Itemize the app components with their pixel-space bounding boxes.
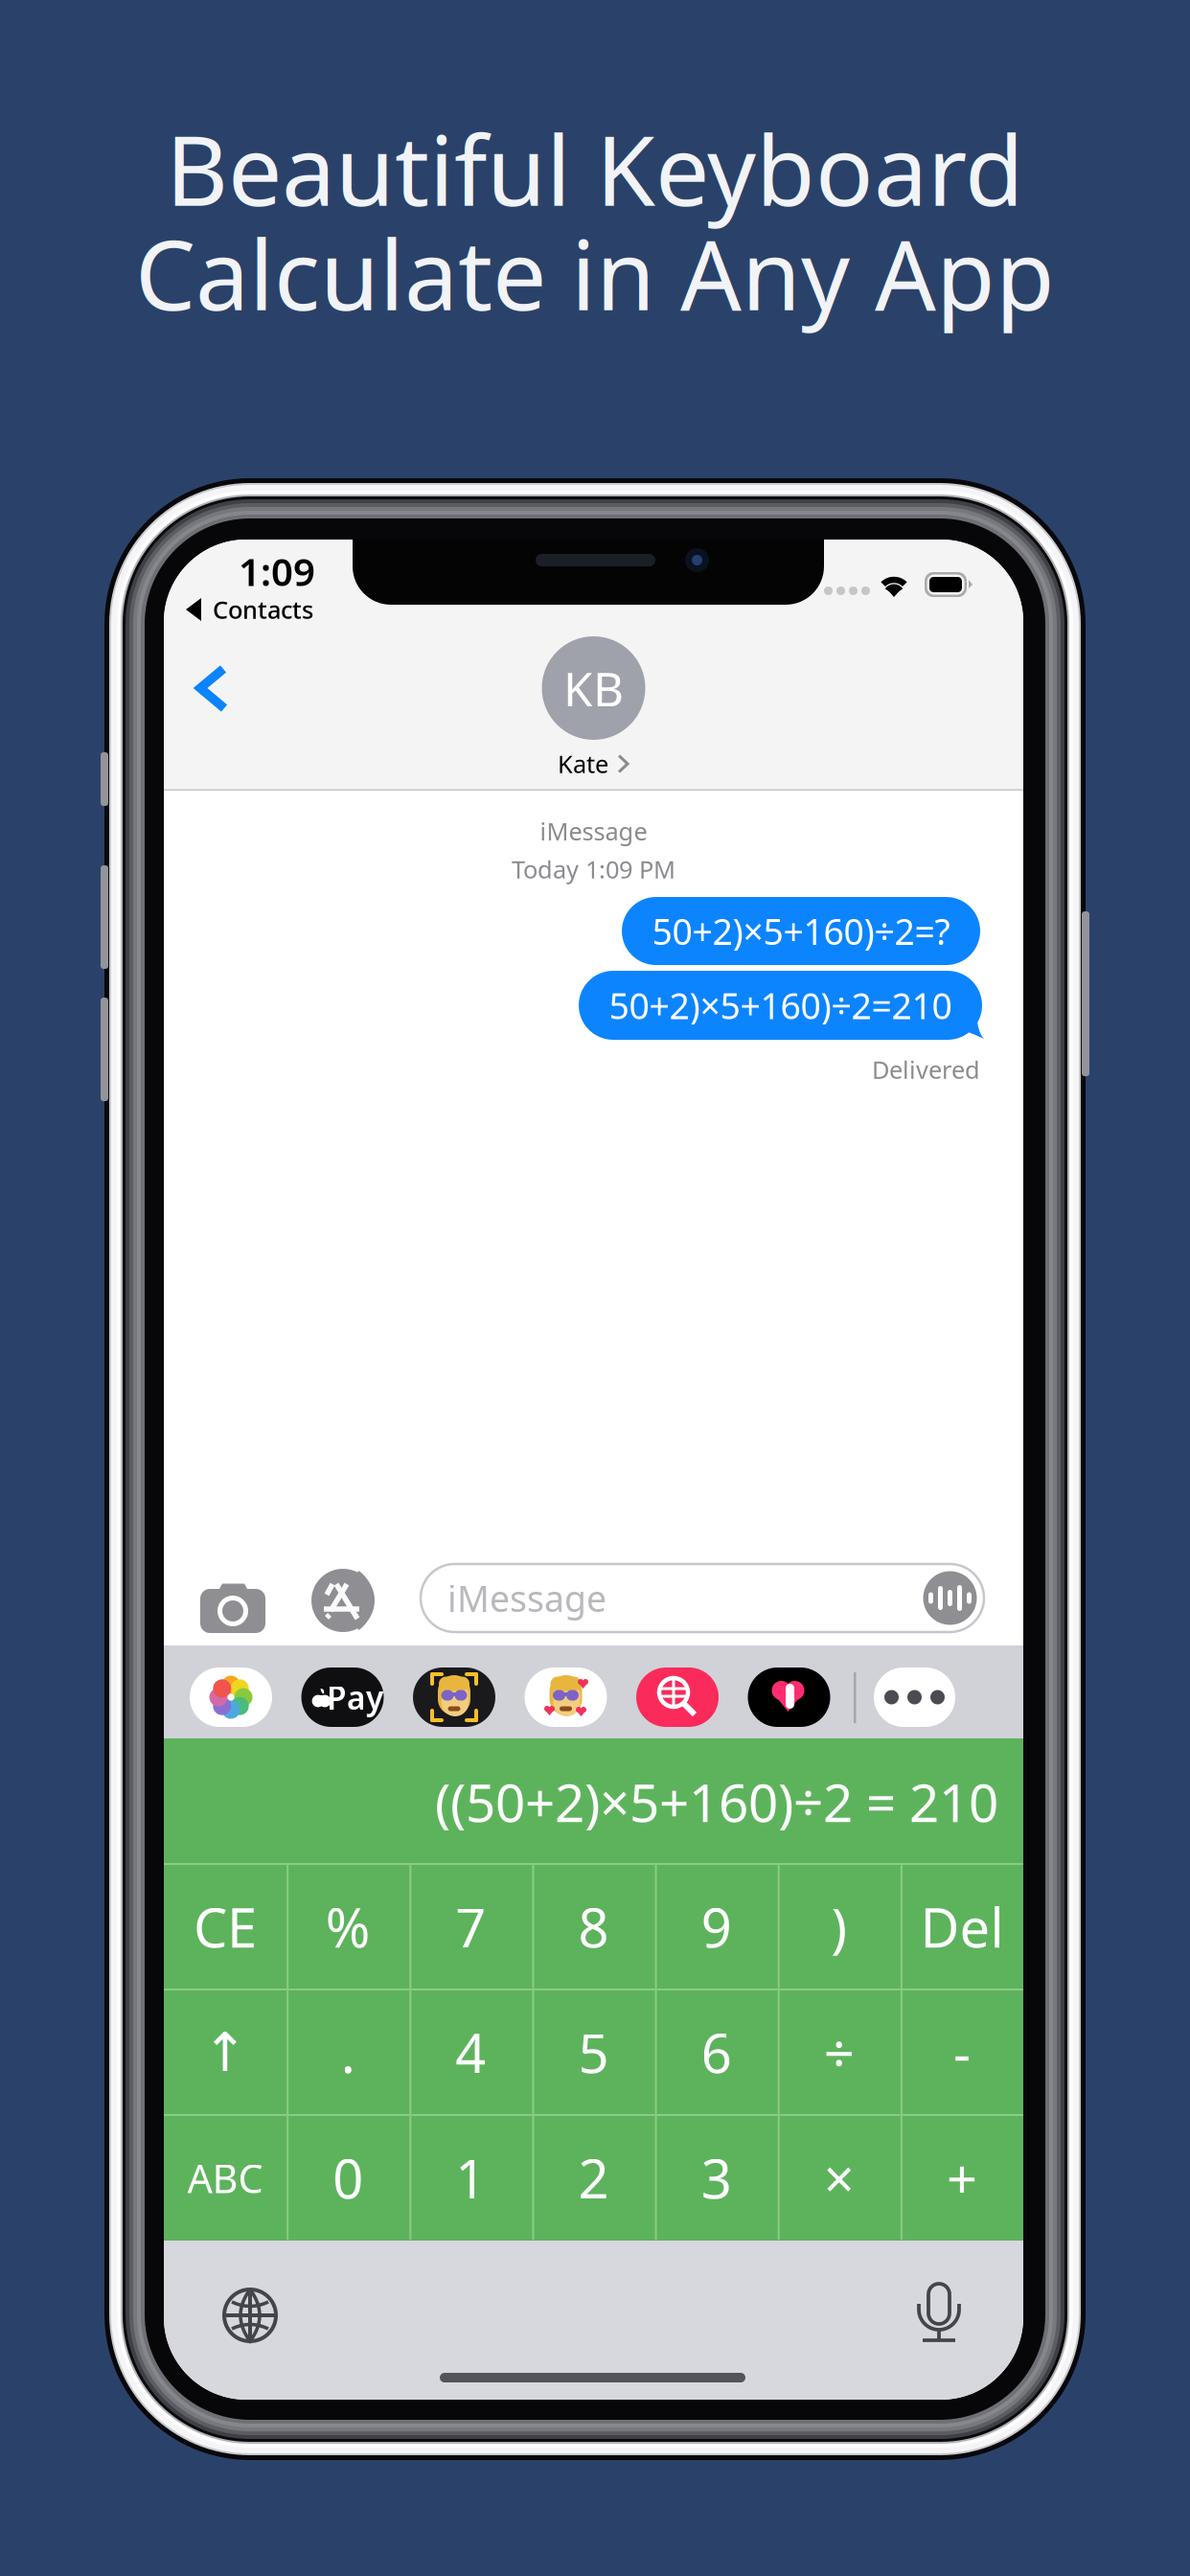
button[interactable]: iMessage [421, 1564, 984, 1632]
button[interactable]: App Store [308, 1569, 378, 1632]
button[interactable]: + [901, 2116, 1023, 2240]
staticText: CE [194, 1891, 257, 1962]
staticText: Calculate in Any App [135, 209, 1055, 337]
staticText: 9 [701, 1891, 732, 1962]
button[interactable]: 2 [532, 2116, 655, 2240]
staticText: 3 [701, 2142, 732, 2213]
staticText: ((50+2)×5+160)÷2 = 210 [435, 1767, 998, 1836]
staticText: Kate [558, 748, 608, 780]
button[interactable]: iMessage app [525, 1667, 607, 1727]
staticText: 7 [455, 1891, 486, 1962]
staticText: KB [563, 657, 624, 719]
button[interactable]: ÷ [778, 1990, 900, 2114]
button[interactable]: 0 [287, 2116, 409, 2240]
staticText: 8 [578, 1891, 609, 1962]
staticText: Delivered [872, 1053, 980, 1086]
staticText: iMessage [540, 815, 647, 847]
staticText: 1:09 [239, 546, 315, 597]
staticText: 2 [578, 2142, 609, 2213]
button[interactable]: CE [164, 1865, 287, 1989]
button[interactable]: - [901, 1990, 1023, 2114]
button[interactable]: Del [901, 1865, 1023, 1989]
button[interactable]: 7 [409, 1865, 532, 1989]
button[interactable]: 1 [409, 2116, 532, 2240]
button[interactable]: 5 [532, 1990, 655, 2114]
staticText: Beautiful Keyboard [166, 105, 1024, 232]
button[interactable]: iMessage app [748, 1667, 830, 1727]
staticText: 4 [455, 2017, 486, 2088]
button[interactable]: ABC [164, 2116, 287, 2240]
button[interactable]: % [287, 1865, 409, 1989]
staticText: 50+2)×5+160)÷2=? [652, 907, 950, 955]
button[interactable]: 4 [409, 1990, 532, 2114]
button[interactable]: KB [542, 636, 645, 740]
staticText: 5 [578, 2017, 609, 2088]
button[interactable]: Change keyboard [216, 2281, 285, 2350]
button[interactable]: 6 [655, 1990, 778, 2114]
button[interactable]: ↑ [164, 1990, 287, 2114]
button[interactable]: iMessage app [190, 1667, 272, 1727]
button[interactable]: Kate [479, 748, 709, 780]
staticText: 1 [455, 2142, 486, 2213]
staticText: iMessage [447, 1574, 606, 1622]
staticText: 0 [333, 2142, 363, 2213]
button[interactable]: 3 [655, 2116, 778, 2240]
staticText: Pay [327, 1676, 383, 1718]
staticText: ÷ [824, 2017, 854, 2088]
button[interactable]: iMessage app [636, 1667, 719, 1727]
staticText: 50+2)×5+160)÷2=210 [609, 982, 952, 1029]
staticText: + [947, 2142, 977, 2213]
button[interactable]: 9 [655, 1865, 778, 1989]
button[interactable]: 8 [532, 1865, 655, 1989]
staticText: Today 1:09 PM [512, 853, 675, 885]
button[interactable]: More apps [874, 1667, 955, 1727]
staticText: ABC [187, 2152, 263, 2204]
staticText: % [325, 1891, 371, 1962]
button[interactable]: iMessage app [301, 1667, 384, 1727]
button[interactable]: ) [778, 1865, 900, 1989]
staticText: × [824, 2142, 854, 2213]
button[interactable]: Dictation [904, 2279, 973, 2348]
staticText: . [341, 2017, 355, 2088]
button[interactable]: Contacts [185, 593, 511, 626]
staticText: Del [920, 1891, 1004, 1962]
button[interactable]: Camera [197, 1575, 268, 1637]
staticText: 6 [701, 2017, 732, 2088]
button[interactable]: Back [179, 651, 254, 725]
staticText: ↑ [203, 2022, 248, 2083]
button[interactable]: iMessage app [413, 1667, 495, 1727]
staticText: Contacts [213, 593, 313, 626]
staticText: - [953, 2017, 970, 2088]
button[interactable]: × [778, 2116, 900, 2240]
staticText: ) [831, 1891, 847, 1962]
button[interactable]: . [287, 1990, 409, 2114]
